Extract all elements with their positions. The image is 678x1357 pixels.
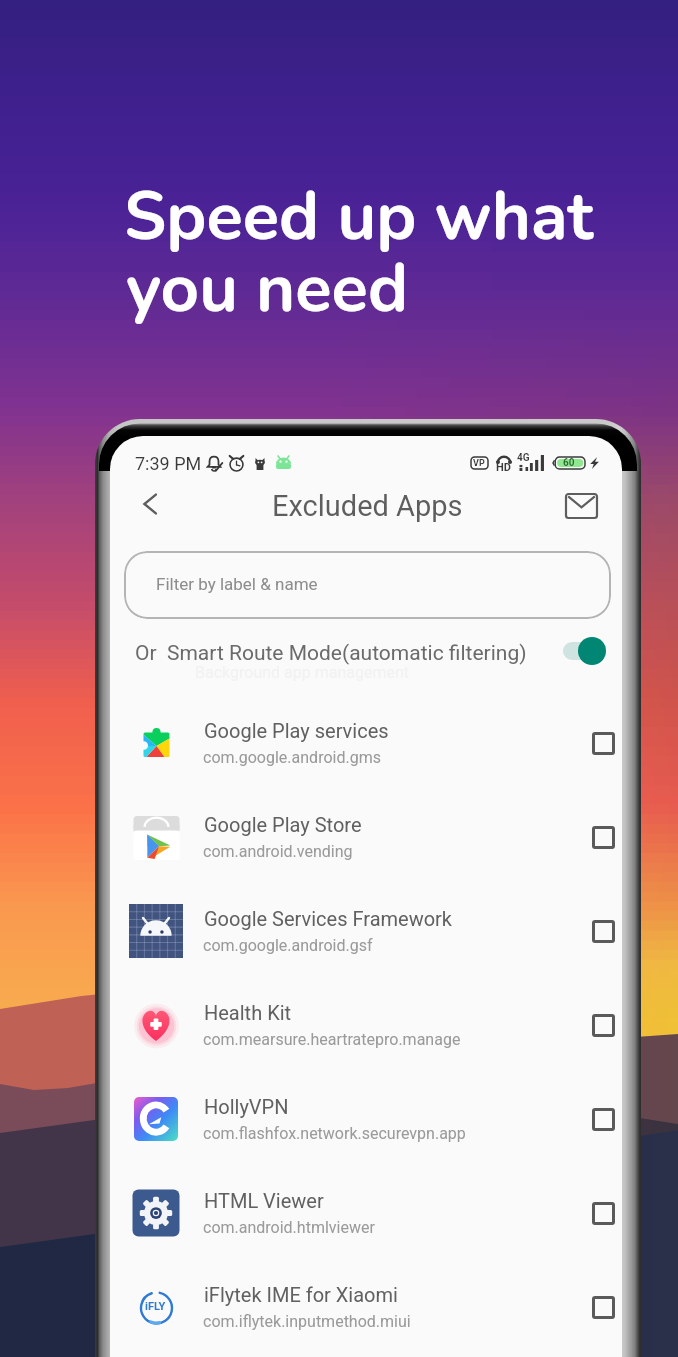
button[interactable]: Google Play services: [110, 694, 622, 788]
button[interactable]: Filter by label & name: [124, 551, 611, 619]
staticText: com.google.android.gsf: [203, 936, 373, 955]
staticText: com.iflytek.inputmethod.miui: [203, 1312, 411, 1331]
staticText: Google Services Framework: [204, 907, 452, 930]
button[interactable]: Back: [132, 486, 168, 522]
staticText: 4G: [517, 452, 530, 464]
staticText: com.android.vending: [203, 842, 353, 861]
staticText: com.android.htmlviewer: [203, 1218, 375, 1237]
staticText: iFLY: [145, 1300, 166, 1313]
button[interactable]: iFLY: [110, 1258, 622, 1352]
button[interactable]: Mail: [558, 486, 604, 526]
button[interactable]: Google Play Store: [110, 788, 622, 882]
staticText: Health Kit: [204, 1001, 292, 1024]
staticText: HD: [496, 461, 511, 474]
button[interactable]: HollyVPN: [110, 1070, 622, 1164]
staticText: 60: [563, 457, 575, 469]
staticText: Background app management: [195, 663, 409, 682]
staticText: iFlytek IME for Xiaomi: [204, 1283, 398, 1306]
staticText: Filter by label & name: [156, 574, 318, 594]
staticText: you need: [126, 243, 409, 334]
staticText: HTML Viewer: [204, 1189, 324, 1212]
button[interactable]: Health Kit: [110, 976, 622, 1070]
button[interactable]: HTML Viewer: [110, 1164, 622, 1258]
staticText: com.flashfox.network.securevpn.app: [203, 1124, 466, 1143]
staticText: Google Play services: [204, 719, 389, 742]
staticText: HollyVPN: [204, 1095, 289, 1118]
staticText: Or Smart Route Mode(automatic filtering): [135, 641, 527, 666]
staticText: Excluded Apps: [272, 489, 463, 523]
staticText: Speed up what: [124, 171, 594, 262]
staticText: Google Play Store: [204, 813, 362, 836]
staticText: VPN: [473, 458, 490, 470]
staticText: com.google.android.gms: [203, 748, 381, 767]
button[interactable]: Smart Route Mode toggle: [557, 629, 621, 673]
staticText: com.mearsure.heartratepro.manage: [203, 1030, 461, 1049]
staticText: 7:39 PM: [135, 453, 202, 474]
button[interactable]: Google Services Framework: [110, 882, 622, 976]
